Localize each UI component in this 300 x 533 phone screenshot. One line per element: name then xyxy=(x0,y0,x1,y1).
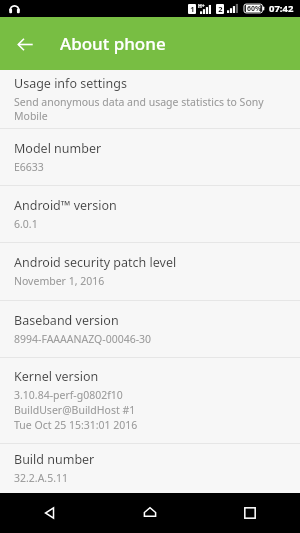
staticText: 32.2.A.5.11 xyxy=(14,471,69,485)
button[interactable]: Model number xyxy=(0,129,300,185)
staticText: Tue Oct 25 15:31:01 2016 xyxy=(14,418,138,432)
staticText: Baseband version xyxy=(14,312,119,329)
staticText: Android™ version xyxy=(14,197,117,214)
staticText: Send anonymous data and usage statistics… xyxy=(14,95,288,123)
staticText: About phone xyxy=(60,32,166,55)
staticText: E6633 xyxy=(14,160,44,174)
staticText: 8994-FAAAANAZQ-00046-30 xyxy=(14,332,152,346)
staticText: November 1, 2016 xyxy=(14,274,105,288)
button[interactable]: Android security patch level xyxy=(0,243,300,300)
staticText: 1 xyxy=(190,4,195,14)
staticText: Android security patch level xyxy=(14,254,177,271)
staticText: Usage info settings xyxy=(14,75,127,92)
button[interactable]: Back xyxy=(0,493,100,533)
button[interactable]: Home xyxy=(100,493,200,533)
staticText: BuildUser@BuildHost #1 xyxy=(14,403,136,417)
button[interactable]: Usage info settings xyxy=(0,70,300,128)
staticText: Model number xyxy=(14,140,102,157)
staticText: 3.10.84-perf-g0802f10 xyxy=(14,388,123,402)
staticText: 60% xyxy=(247,4,262,14)
staticText: Kernel version xyxy=(14,368,99,385)
button[interactable]: Android™ version xyxy=(0,186,300,242)
button[interactable]: Kernel version xyxy=(0,358,300,443)
button[interactable]: Back xyxy=(6,25,44,63)
button[interactable]: Build number xyxy=(0,444,300,493)
staticText: Build number xyxy=(14,451,95,468)
staticText: 07:42 xyxy=(269,2,294,15)
staticText: 6.0.1 xyxy=(14,217,38,231)
staticText: H+ xyxy=(198,3,205,10)
button[interactable]: Baseband version xyxy=(0,301,300,357)
staticText: 2 xyxy=(218,4,223,14)
button[interactable]: Recents xyxy=(200,493,300,533)
